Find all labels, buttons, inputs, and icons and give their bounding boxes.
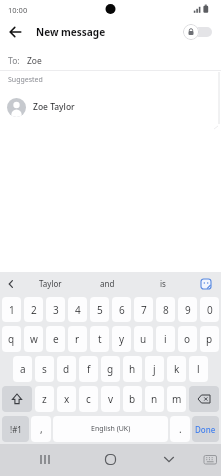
button[interactable]: English (UK) [53,416,168,442]
staticText: d [63,362,70,376]
staticText: j [153,362,156,376]
staticText: 7 [141,303,147,317]
button[interactable]: Done [192,416,219,442]
button[interactable]: f [79,356,98,382]
button[interactable]: s [35,356,54,382]
staticText: Zoe Taylor [33,101,75,113]
staticText: 5 [97,303,103,317]
staticText: Done [195,424,216,435]
button[interactable] [2,386,32,412]
button[interactable]: h [123,356,142,382]
button[interactable]: 9 [178,297,197,322]
staticText: Zoe [27,55,42,67]
staticText: o [184,332,191,346]
button[interactable] [73,444,147,476]
button[interactable]: r [68,326,87,352]
button[interactable] [191,272,221,295]
staticText: s [42,362,47,376]
staticText: New message [36,25,106,39]
staticText: 3 [53,303,59,317]
staticText: i [164,332,167,346]
button[interactable]: n [145,386,164,412]
staticText: Taylor [39,278,62,289]
button[interactable]: To: [8,52,221,70]
staticText: and [100,278,115,289]
staticText: 10:00 [8,5,28,15]
staticText: h [129,362,136,376]
staticText: m [172,392,182,406]
staticText: Suggested [8,75,43,85]
staticText: 0 [207,303,213,317]
button[interactable]: i [156,326,175,352]
button[interactable]: t [90,326,109,352]
staticText: x [64,392,70,406]
button[interactable]: b [123,386,142,412]
button[interactable]: 2 [24,297,43,322]
button[interactable]: p [200,326,219,352]
staticText: 9 [185,303,191,317]
button[interactable]: 0 [200,297,219,322]
button[interactable] [189,386,219,412]
button[interactable]: 4 [68,297,87,322]
button[interactable] [183,23,212,41]
staticText: To: [8,55,20,67]
button[interactable]: 5 [90,297,109,322]
button[interactable]: x [57,386,76,412]
staticText: 8 [163,303,169,317]
button[interactable]: 7 [134,297,153,322]
staticText: k [174,362,180,376]
button[interactable]: 8 [156,297,175,322]
staticText: u [140,332,147,346]
staticText: 6 [119,303,125,317]
staticText: is [160,278,166,289]
staticText: . [179,422,182,436]
staticText: c [86,392,91,406]
button[interactable]: l [189,356,208,382]
button[interactable]: z [35,386,54,412]
button[interactable]: is [135,272,191,295]
button[interactable]: u [134,326,153,352]
button[interactable]: , [31,416,51,442]
button[interactable]: k [167,356,186,382]
button[interactable]: e [46,326,65,352]
button[interactable]: o [178,326,197,352]
staticText: z [42,392,47,406]
button[interactable]: . [170,416,190,442]
staticText: w [30,332,38,346]
button[interactable]: y [112,326,131,352]
button[interactable]: Zoe Taylor [7,89,221,125]
staticText: 1 [9,303,15,317]
button[interactable]: 6 [112,297,131,322]
button[interactable]: d [57,356,76,382]
button[interactable]: !#1 [2,416,29,442]
button[interactable]: v [101,386,120,412]
staticText: a [20,362,26,376]
staticText: f [87,362,91,376]
button[interactable] [0,444,73,476]
button[interactable]: and [79,272,135,295]
button[interactable] [0,272,22,295]
button[interactable] [147,444,221,476]
button[interactable]: j [145,356,164,382]
button[interactable]: c [79,386,98,412]
staticText: l [197,362,200,376]
staticText: g [107,362,114,376]
button[interactable]: m [167,386,186,412]
button[interactable]: 1 [2,297,21,322]
staticText: 2 [31,303,37,317]
button[interactable]: q [2,326,21,352]
button[interactable]: Taylor [22,272,79,295]
staticText: y [119,332,125,346]
button[interactable] [6,22,26,42]
staticText: e [53,332,59,346]
staticText: 4 [75,303,81,317]
staticText: b [129,392,136,406]
button[interactable]: g [101,356,120,382]
staticText: r [75,332,80,346]
staticText: q [8,332,15,346]
button[interactable]: w [24,326,43,352]
staticText: t [98,332,102,346]
button[interactable]: a [13,356,32,382]
button[interactable]: 3 [46,297,65,322]
staticText: v [108,392,114,406]
